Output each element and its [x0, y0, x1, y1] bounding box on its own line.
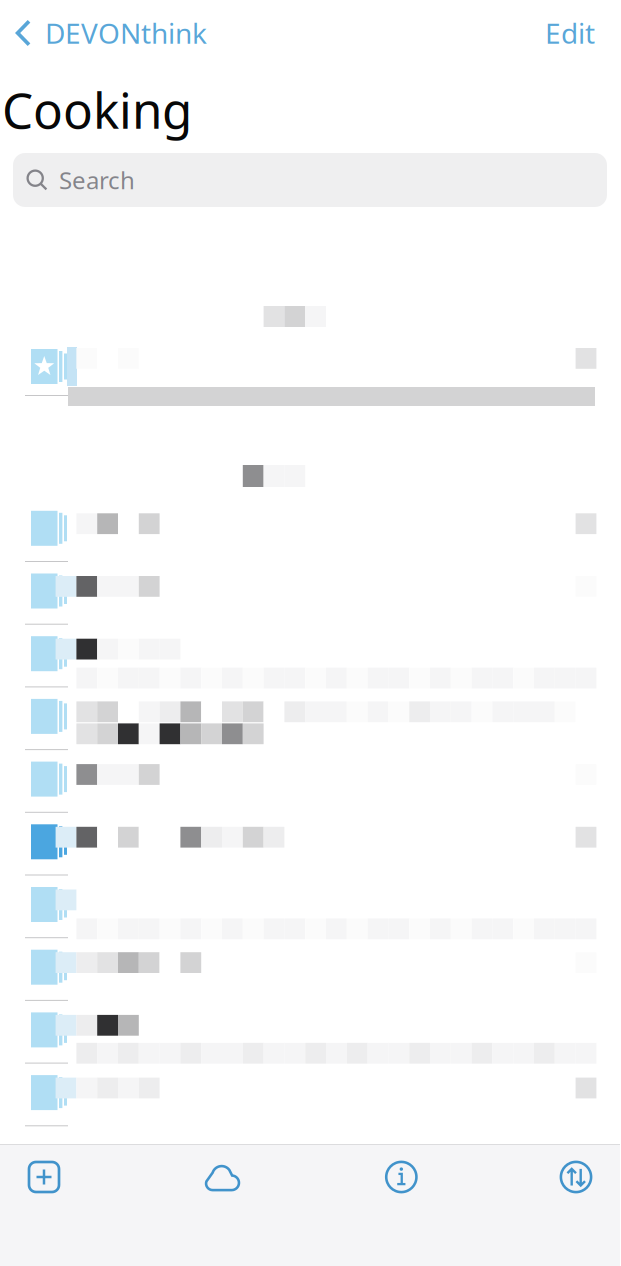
button[interactable]: Sync — [202, 1163, 244, 1191]
button[interactable] — [0, 499, 620, 562]
button[interactable]: Sort — [559, 1160, 593, 1194]
button[interactable] — [0, 687, 620, 750]
button[interactable] — [0, 750, 620, 813]
button[interactable] — [0, 347, 620, 406]
button[interactable]: New Item — [27, 1160, 61, 1194]
staticText: Edit — [545, 14, 595, 52]
button[interactable] — [0, 1001, 620, 1064]
button[interactable]: Info — [384, 1160, 418, 1194]
button[interactable]: DEVONthink — [0, 0, 217, 66]
button[interactable] — [0, 1064, 620, 1126]
staticText: Cooking — [2, 77, 192, 142]
button[interactable]: Search — [13, 153, 607, 207]
button[interactable] — [0, 875, 620, 938]
button[interactable] — [0, 625, 620, 687]
button[interactable] — [0, 813, 620, 875]
button[interactable]: Edit — [545, 0, 620, 66]
button[interactable] — [0, 938, 620, 1001]
button[interactable] — [0, 562, 620, 625]
staticText: DEVONthink — [45, 14, 207, 52]
staticText: Search — [59, 164, 135, 196]
